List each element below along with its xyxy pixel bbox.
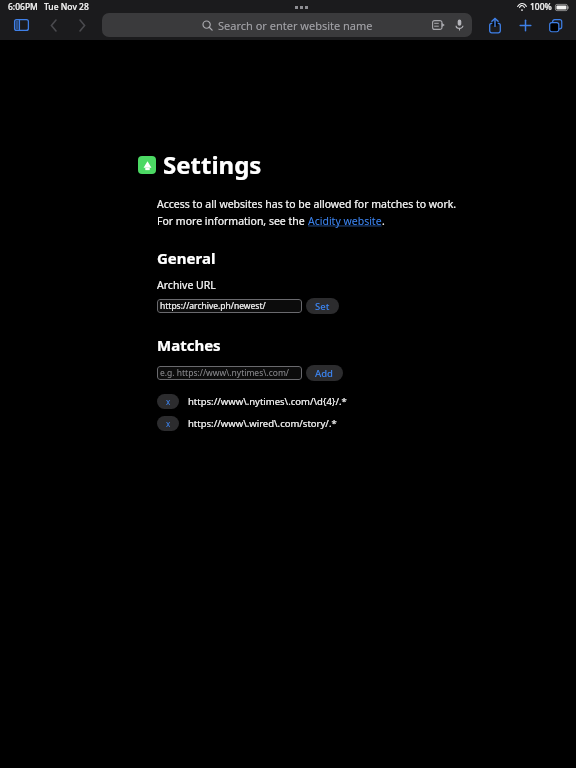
staticText: x	[166, 418, 171, 429]
staticText: https://www\.wired\.com/story/.*	[188, 417, 337, 430]
button[interactable]: Share	[482, 12, 508, 38]
button[interactable]: https://archive.ph/newest/	[157, 299, 302, 313]
button[interactable]: New tab	[512, 12, 538, 38]
staticText: Tue Nov 28	[44, 1, 89, 13]
staticText: 6:06PM	[8, 1, 38, 13]
button[interactable]: Voice search	[452, 18, 466, 32]
button[interactable]: Remove match	[157, 416, 179, 431]
button[interactable]: e.g. https://www\.nytimes\.com/\d{4}/.	[157, 366, 302, 380]
button[interactable]: Search or enter website name	[102, 13, 472, 37]
button[interactable]: Reader	[430, 17, 446, 33]
staticText: Acidity website	[308, 214, 382, 228]
staticText: Matches	[157, 335, 221, 355]
staticText: Settings	[163, 148, 262, 181]
button[interactable]: Remove match	[157, 394, 179, 409]
staticText: 100%	[530, 1, 552, 13]
button[interactable]: Show sidebar	[8, 13, 34, 37]
button[interactable]: Set	[306, 298, 339, 314]
staticText: Set	[315, 300, 330, 313]
button[interactable]: Acidity website	[308, 214, 382, 228]
staticText: .	[382, 214, 385, 228]
button[interactable]: Remove match	[157, 394, 347, 409]
staticText: Access to all websites has to be allowed…	[157, 197, 457, 211]
staticText: x	[166, 396, 171, 407]
staticText: Archive URL	[157, 278, 216, 292]
staticText: https://www\.nytimes\.com/\d{4}/.*	[188, 395, 347, 408]
button[interactable]: Remove match	[157, 416, 337, 431]
button[interactable]: Show tabs	[542, 12, 568, 38]
staticText: Add	[315, 367, 334, 380]
staticText: For more information, see the	[157, 214, 308, 228]
staticText: Search or enter website name	[218, 18, 373, 33]
button[interactable]: Add	[306, 365, 343, 381]
staticText: https://archive.ph/newest/	[160, 300, 266, 312]
staticText: General	[157, 248, 216, 268]
staticText: e.g. https://www\.nytimes\.com/\d{4}/.	[160, 367, 302, 379]
button[interactable]: Forward	[70, 13, 94, 37]
button[interactable]: Back	[42, 13, 66, 37]
